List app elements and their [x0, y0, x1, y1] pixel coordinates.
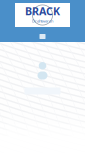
button[interactable]: BRACK Drahtwaren — [15, 3, 70, 27]
staticText: Drahtwaren — [32, 18, 53, 23]
staticText: BRACK — [25, 4, 60, 18]
button[interactable]: Menü — [37, 32, 47, 41]
